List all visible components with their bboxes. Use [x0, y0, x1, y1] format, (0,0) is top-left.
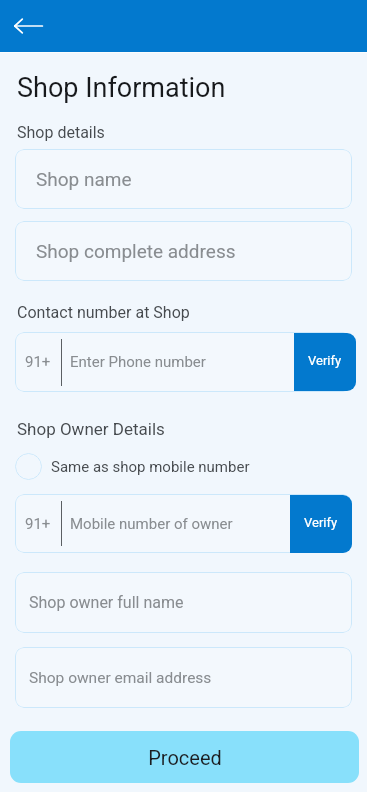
- button[interactable]: Enter Phone number: [62, 332, 352, 392]
- staticText: Contact number at Shop: [17, 303, 190, 322]
- button[interactable]: Shop complete address: [15, 221, 352, 281]
- staticText: Shop complete address: [36, 240, 236, 262]
- button[interactable]: Shop name: [15, 149, 352, 209]
- button[interactable]: Mobile number of owner: [62, 494, 352, 553]
- staticText: 91+: [25, 515, 51, 533]
- button[interactable]: Proceed: [10, 731, 359, 783]
- button[interactable]: Verify: [294, 333, 356, 391]
- staticText: Shop owner email address: [29, 669, 212, 687]
- staticText: Verify: [304, 515, 338, 530]
- staticText: Shop name: [36, 168, 132, 190]
- staticText: Verify: [308, 353, 342, 368]
- staticText: Enter Phone number: [70, 353, 206, 371]
- button[interactable]: Verify: [290, 495, 352, 553]
- staticText: Shop Owner Details: [17, 419, 165, 439]
- staticText: Same as shop mobile number: [51, 458, 250, 476]
- button[interactable]: Shop owner full name: [15, 572, 352, 633]
- button[interactable]: Same as shop mobile number: [15, 453, 250, 480]
- button[interactable]: Shop owner email address: [15, 647, 352, 708]
- staticText: Shop owner full name: [29, 593, 184, 612]
- staticText: Proceed: [148, 746, 222, 769]
- staticText: Shop Information: [17, 72, 226, 104]
- staticText: Shop details: [17, 123, 105, 142]
- button[interactable]: Back: [6, 4, 50, 48]
- staticText: 91+: [25, 353, 51, 371]
- staticText: Mobile number of owner: [70, 515, 233, 533]
